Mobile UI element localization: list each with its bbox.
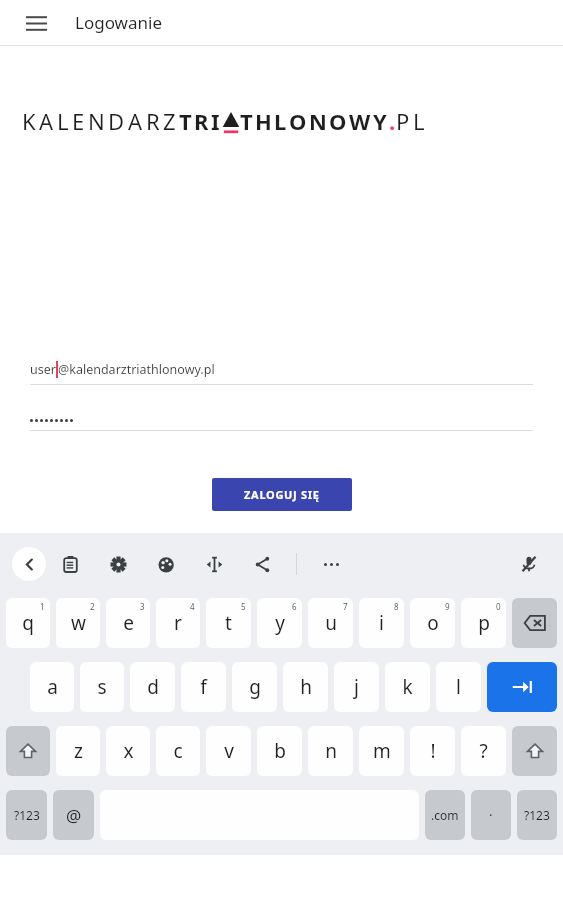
staticText: v: [224, 738, 234, 764]
button[interactable]: d: [130, 662, 175, 712]
staticText: I: [211, 106, 220, 136]
staticText: R: [146, 106, 160, 136]
staticText: 8: [394, 601, 399, 612]
staticText: 2: [90, 601, 95, 612]
staticText: t: [225, 610, 232, 636]
button[interactable]: x: [106, 726, 150, 776]
button[interactable]: y: [257, 598, 302, 648]
button[interactable]: w: [56, 598, 100, 648]
button[interactable]: ?: [461, 726, 506, 776]
staticText: A: [128, 106, 143, 136]
button[interactable]: Open navigation menu: [16, 3, 56, 43]
button[interactable]: [30, 419, 533, 431]
staticText: g: [249, 674, 261, 700]
staticText: .com: [431, 807, 459, 823]
staticText: p: [478, 610, 490, 636]
staticText: L: [274, 106, 287, 136]
staticText: O: [289, 106, 307, 136]
button[interactable]: Next field: [487, 662, 557, 712]
button[interactable]: Backspace: [512, 598, 557, 648]
staticText: f: [200, 674, 207, 700]
button[interactable]: n: [308, 726, 353, 776]
button[interactable]: Text editing: [190, 542, 238, 586]
button[interactable]: v: [206, 726, 251, 776]
button[interactable]: e: [106, 598, 150, 648]
staticText: ZALOGUJ SIĘ: [244, 487, 320, 502]
staticText: L: [57, 106, 69, 136]
button[interactable]: Share: [238, 542, 286, 586]
staticText: O: [329, 106, 347, 136]
button[interactable]: z: [56, 726, 100, 776]
button[interactable]: u: [308, 598, 353, 648]
staticText: x: [123, 738, 134, 764]
button[interactable]: ?123: [6, 790, 47, 840]
button[interactable]: m: [359, 726, 404, 776]
staticText: N: [309, 106, 327, 136]
button[interactable]: ZALOGUJ SIĘ: [212, 478, 352, 511]
staticText: j: [354, 674, 359, 700]
button[interactable]: c: [156, 726, 200, 776]
button[interactable]: Shift: [6, 726, 50, 776]
staticText: i: [379, 610, 384, 636]
staticText: y: [275, 610, 285, 636]
button[interactable]: b: [257, 726, 302, 776]
staticText: ?123: [14, 807, 40, 823]
staticText: .: [389, 106, 396, 136]
staticText: 5: [241, 601, 246, 612]
staticText: @: [66, 804, 82, 827]
button[interactable]: r: [156, 598, 200, 648]
button[interactable]: t: [206, 598, 251, 648]
staticText: P: [396, 106, 410, 136]
staticText: 4: [190, 601, 195, 612]
staticText: E: [72, 106, 85, 136]
button[interactable]: !: [410, 726, 455, 776]
button[interactable]: h: [283, 662, 328, 712]
button[interactable]: j: [334, 662, 379, 712]
button[interactable]: user: [30, 361, 533, 385]
button[interactable]: i: [359, 598, 404, 648]
staticText: @kalendarztriathlonowy.pl: [58, 361, 215, 378]
staticText: a: [47, 674, 58, 700]
button[interactable]: p: [461, 598, 506, 648]
staticText: 9: [445, 601, 450, 612]
staticText: T: [179, 106, 192, 136]
button[interactable]: Settings: [94, 542, 142, 586]
button[interactable]: l: [436, 662, 481, 712]
staticText: c: [173, 738, 183, 764]
staticText: T: [240, 106, 253, 136]
staticText: e: [123, 610, 134, 636]
button[interactable]: Shift: [512, 726, 557, 776]
button[interactable]: q: [6, 598, 50, 648]
button[interactable]: Expand toolbar: [12, 547, 46, 581]
staticText: N: [88, 106, 105, 136]
button[interactable]: Clipboard: [46, 542, 94, 586]
button[interactable]: f: [181, 662, 226, 712]
staticText: Y: [373, 106, 387, 136]
button[interactable]: More options: [307, 542, 355, 586]
staticText: s: [97, 674, 107, 700]
staticText: m: [373, 738, 391, 764]
staticText: Logowanie: [75, 11, 162, 34]
button[interactable]: Themes: [142, 542, 190, 586]
staticText: H: [255, 106, 272, 136]
staticText: K: [22, 106, 36, 136]
staticText: n: [325, 738, 337, 764]
staticText: 7: [343, 601, 348, 612]
button[interactable]: ?123: [517, 790, 557, 840]
staticText: z: [74, 738, 83, 764]
button[interactable]: g: [232, 662, 277, 712]
button[interactable]: .com: [425, 790, 465, 840]
button[interactable]: @: [53, 790, 94, 840]
staticText: !: [430, 738, 436, 764]
button[interactable]: ·: [471, 790, 511, 840]
button[interactable]: s: [80, 662, 124, 712]
button[interactable]: Voice input off: [511, 546, 547, 582]
staticText: user: [30, 361, 56, 378]
button[interactable]: k: [385, 662, 430, 712]
button[interactable]: a: [30, 662, 74, 712]
staticText: h: [300, 674, 312, 700]
staticText: u: [325, 610, 337, 636]
staticText: 1: [40, 601, 45, 612]
button[interactable]: o: [410, 598, 455, 648]
